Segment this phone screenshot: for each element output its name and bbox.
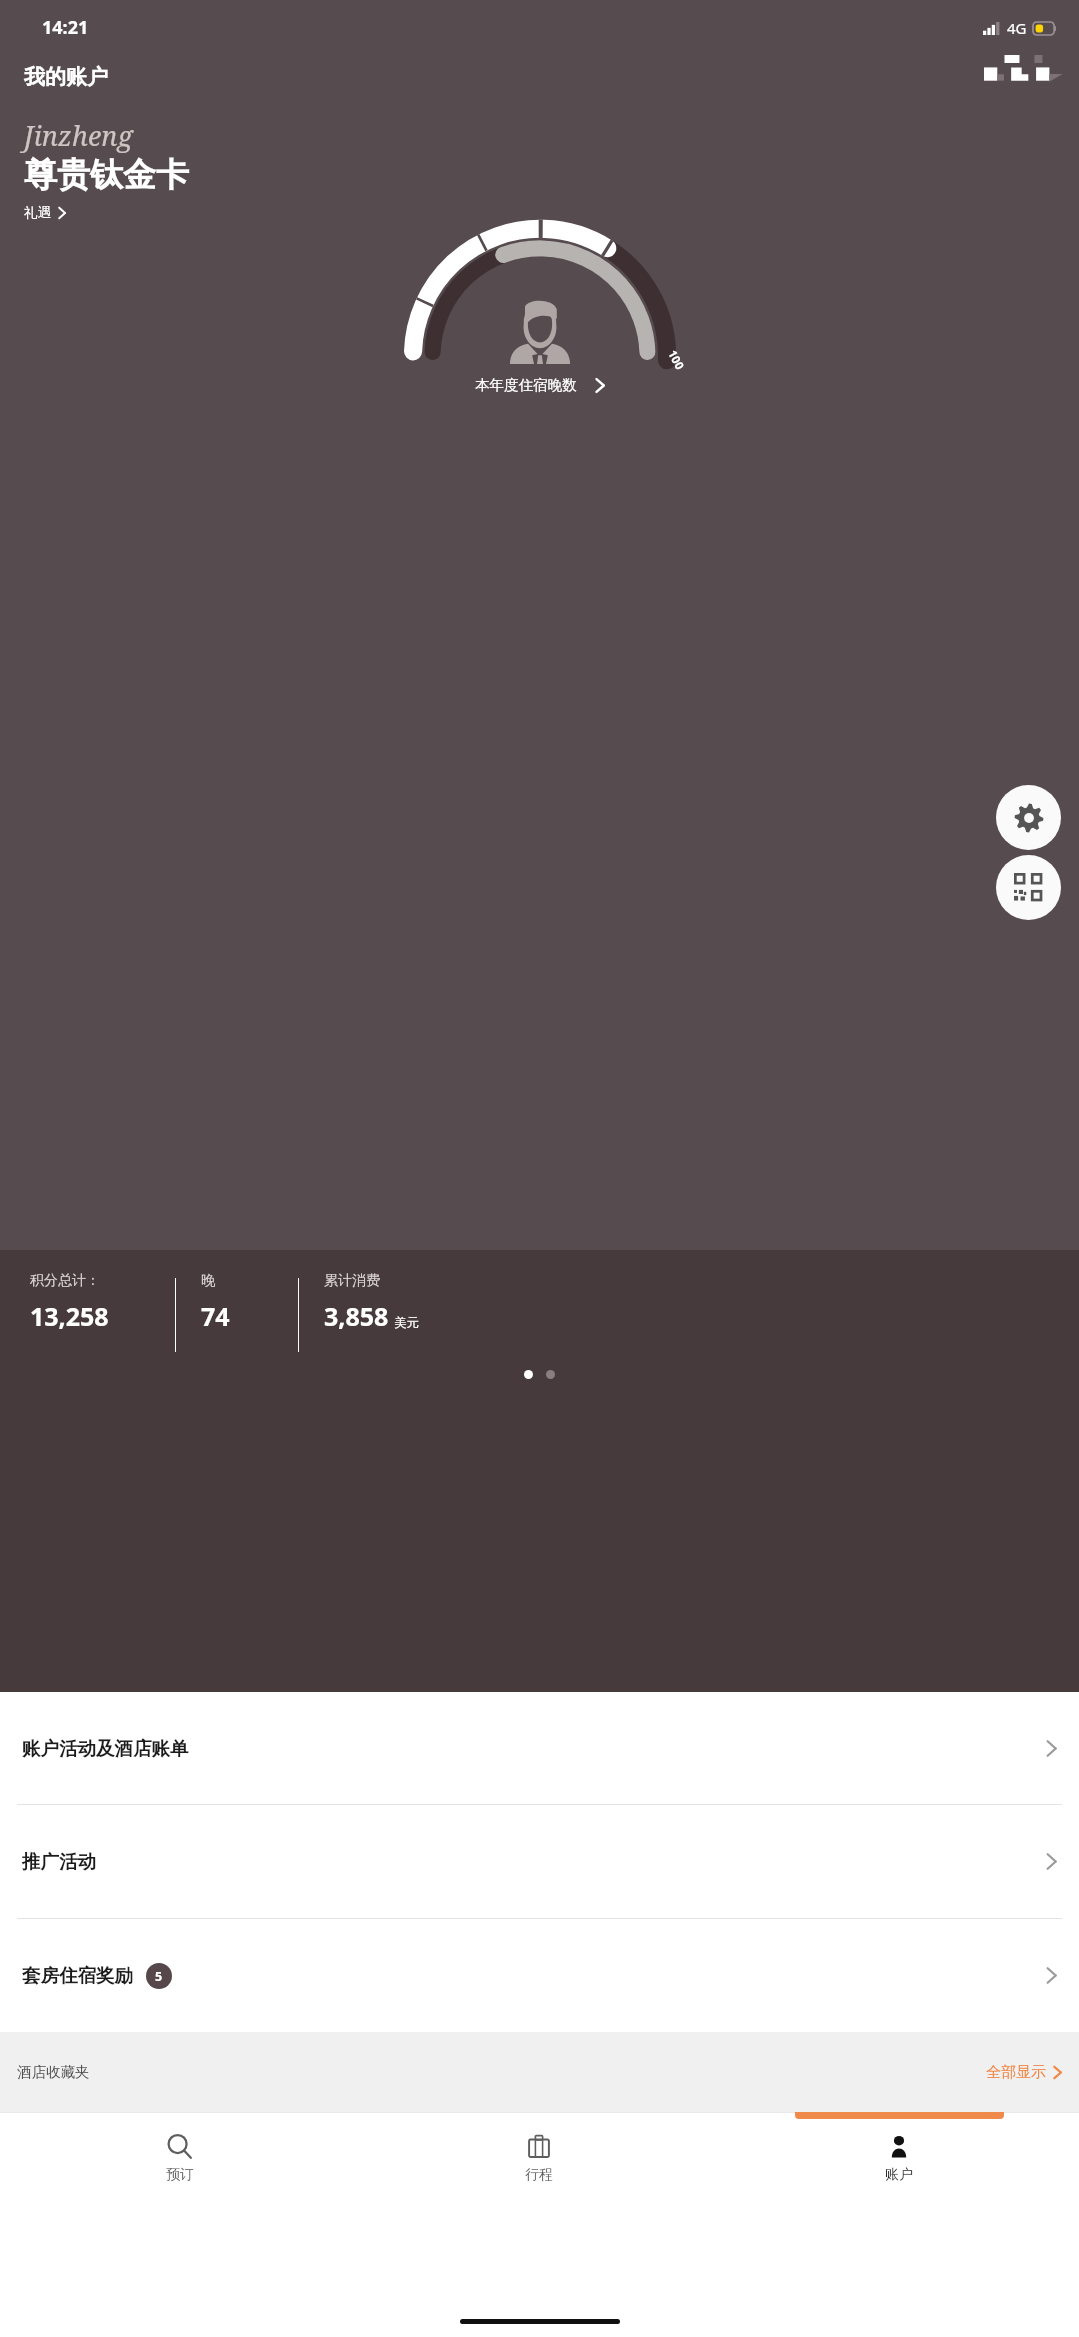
button[interactable]: 推广活动 (0, 1805, 1079, 1918)
button[interactable]: Scan QR code (996, 855, 1061, 920)
staticText: 酒店收藏夹 (17, 2063, 90, 2081)
staticText: 预订 (166, 2166, 194, 2184)
staticText: 13,258 (30, 1299, 109, 1333)
button[interactable]: 礼遇 (24, 204, 66, 221)
staticText: 74 (201, 1299, 230, 1333)
staticText: 5 (155, 1968, 163, 1985)
staticText: 累计消费 (324, 1272, 380, 1290)
button[interactable]: 预订 (0, 2112, 359, 2337)
staticText: Jinzheng (24, 117, 133, 154)
staticText: 账户 (885, 2166, 913, 2184)
staticText: 推广活动 (22, 1850, 96, 1873)
staticText: 套房住宿奖励 (22, 1964, 133, 1987)
staticText: 本年度住宿晚数 (475, 376, 577, 394)
button[interactable]: 账户活动及酒店账单 (0, 1692, 1079, 1804)
button[interactable]: Settings (996, 785, 1061, 850)
staticText: 尊贵钛金卡 (24, 154, 189, 196)
staticText: 3,858 (324, 1299, 389, 1333)
button[interactable]: 本年度住宿晚数 (475, 376, 605, 394)
button[interactable]: 全部显示 (986, 2063, 1062, 2082)
staticText: 礼遇 (24, 204, 51, 221)
staticText: 100 (664, 347, 688, 373)
staticText: 晚 (201, 1272, 215, 1290)
staticText: 14:21 (42, 15, 89, 40)
staticText: 全部显示 (986, 2063, 1046, 2082)
staticText: 行程 (525, 2166, 553, 2184)
button[interactable]: 行程 (359, 2112, 719, 2337)
staticText: 4G (1007, 18, 1027, 38)
button[interactable]: 套房住宿奖励 (0, 1919, 1079, 2032)
button[interactable]: 账户 (719, 2112, 1079, 2337)
staticText: 积分总计： (30, 1272, 100, 1290)
staticText: 我的账户 (24, 64, 108, 90)
staticText: 美元 (394, 1315, 419, 1331)
staticText: 账户活动及酒店账单 (22, 1737, 189, 1760)
